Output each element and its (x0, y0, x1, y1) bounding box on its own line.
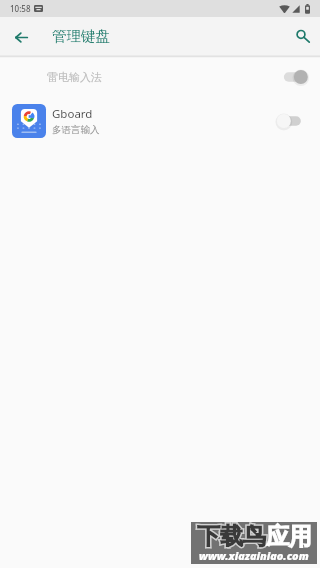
staticText: Gboard (52, 106, 93, 122)
button[interactable]: Toggle keyboard (276, 66, 308, 88)
staticText: 下载鸟 (197, 522, 266, 551)
button[interactable]: Gboard (0, 98, 320, 144)
button[interactable]: 雷电输入法 (0, 58, 320, 95)
staticText: 下载鸟 (197, 522, 266, 551)
staticText: 10:58 (10, 3, 31, 14)
staticText: 多语言输入 (52, 124, 100, 136)
button[interactable]: Back (0, 17, 42, 57)
button[interactable]: Toggle Gboard (276, 110, 308, 132)
staticText: www.xiazainiao.com (199, 548, 309, 563)
staticText: 应用 (266, 522, 312, 551)
staticText: 管理键盘 (52, 27, 110, 45)
staticText: 应用 (266, 522, 312, 551)
staticText: 雷电输入法 (47, 70, 102, 84)
button[interactable]: Search (282, 17, 320, 57)
